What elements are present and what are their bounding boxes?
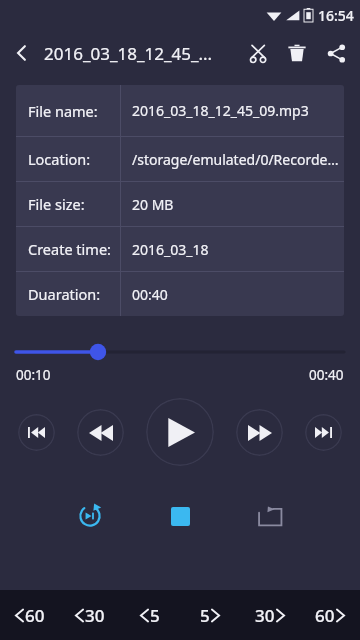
- button[interactable]: 5: [180, 590, 240, 640]
- button[interactable]: 5: [120, 590, 180, 640]
- staticText: 00:10: [16, 366, 51, 384]
- staticText: 2016_03_18_12_45_...: [44, 42, 238, 65]
- staticText: 00:40: [132, 285, 168, 304]
- staticText: 5: [200, 604, 210, 627]
- button[interactable]: Stop: [162, 498, 198, 534]
- button[interactable]: Repeat: [252, 498, 288, 534]
- staticText: 5: [150, 604, 160, 627]
- button[interactable]: Share: [316, 33, 356, 73]
- staticText: Duaration:: [28, 284, 101, 304]
- staticText: File size:: [28, 194, 85, 214]
- staticText: 60: [315, 604, 335, 627]
- staticText: 2016_03_18: [132, 240, 209, 259]
- button[interactable]: 60: [300, 590, 360, 640]
- staticText: 00:40: [309, 366, 344, 384]
- button[interactable]: 60: [0, 590, 60, 640]
- button[interactable]: 30: [60, 590, 120, 640]
- staticText: Create time:: [28, 239, 111, 259]
- button[interactable]: Delete: [278, 34, 316, 72]
- staticText: File name:: [28, 101, 98, 121]
- button[interactable]: Loop section: [72, 498, 108, 534]
- button[interactable]: Rewind: [77, 409, 124, 456]
- button[interactable]: Next: [305, 414, 342, 451]
- staticText: 16:54: [318, 6, 354, 25]
- button[interactable]: Trim: [238, 33, 278, 73]
- button[interactable]: Fast forward: [236, 409, 283, 456]
- staticText: 2016_03_18_12_45_09.mp3: [132, 101, 309, 120]
- button[interactable]: Back: [0, 31, 44, 75]
- button[interactable]: Play: [146, 398, 214, 466]
- button[interactable]: Seek bar: [0, 342, 360, 362]
- staticText: /storage/emulated/0/Recorders/: [132, 150, 344, 169]
- button[interactable]: Previous: [18, 414, 55, 451]
- staticText: 60: [25, 604, 45, 627]
- staticText: 20 MB: [132, 195, 174, 214]
- staticText: 30: [85, 604, 105, 627]
- staticText: 30: [255, 604, 275, 627]
- button[interactable]: 30: [240, 590, 300, 640]
- staticText: Location:: [28, 149, 91, 169]
